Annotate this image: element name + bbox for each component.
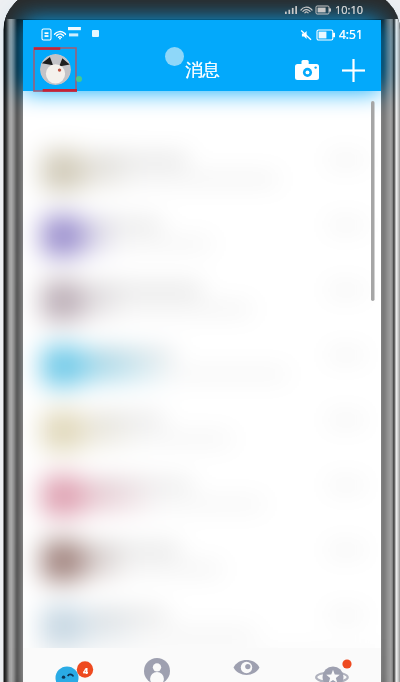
staticText: 4:51 [339, 26, 363, 42]
button[interactable]: Camera [285, 48, 329, 92]
button[interactable]: Me [291, 648, 381, 682]
staticText: 10:10 [335, 2, 364, 17]
button[interactable]: Messages [23, 648, 112, 682]
staticText: 消息 [185, 59, 220, 81]
staticText: 4 [83, 664, 89, 676]
button[interactable]: Add [331, 48, 375, 92]
button[interactable]: Profile avatar [33, 47, 77, 92]
button[interactable]: Contacts [112, 648, 201, 682]
button[interactable]: Discover [201, 648, 291, 682]
